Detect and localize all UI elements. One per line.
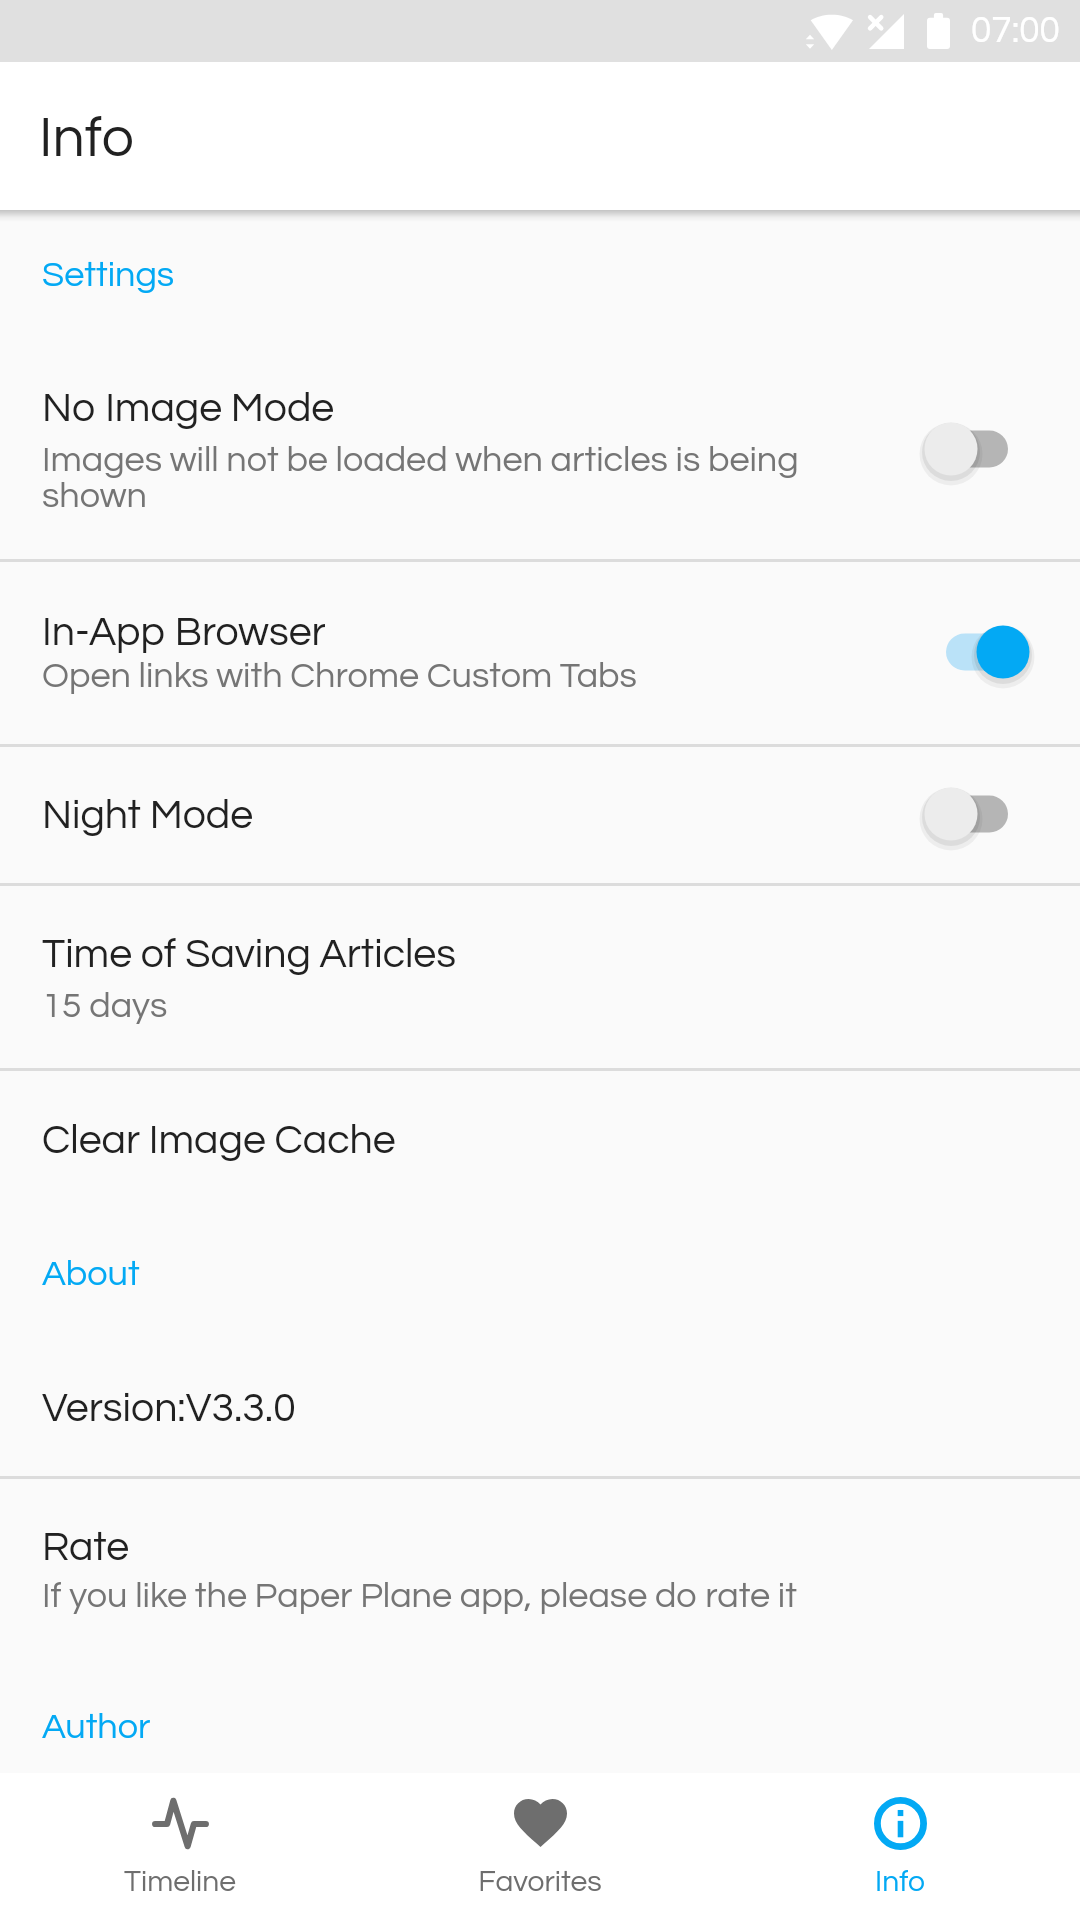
button[interactable]: Version:V3.3.0	[0, 1338, 1080, 1477]
staticText: Settings	[42, 256, 175, 293]
button[interactable]: Rate	[0, 1479, 1080, 1662]
button[interactable]: Time of Saving Articles	[0, 886, 1080, 1069]
button[interactable]: Night Mode	[0, 747, 1080, 884]
staticText: Info	[39, 109, 134, 168]
other: Battery full	[927, 13, 950, 49]
button[interactable]: In-App Browser on	[905, 607, 1028, 697]
button[interactable]: Clear Image Cache	[0, 1071, 1080, 1208]
staticText: Timeline	[124, 1866, 236, 1897]
staticText: Rate	[42, 1526, 130, 1568]
staticText: Info	[875, 1866, 925, 1897]
staticText: About	[42, 1255, 140, 1292]
staticText: 15 days	[42, 987, 842, 1024]
button[interactable]: Timeline	[0, 1773, 360, 1920]
staticText: 07:00	[971, 12, 1060, 50]
button[interactable]: No Image Mode	[0, 334, 1080, 560]
staticText: Night Mode	[42, 794, 254, 836]
staticText: No Image Mode	[42, 387, 335, 429]
other: No signal	[869, 14, 904, 49]
button[interactable]: Favorites	[360, 1773, 720, 1920]
staticText: Time of Saving Articles	[42, 933, 456, 975]
button[interactable]: In-App Browser	[0, 562, 1080, 745]
staticText: In-App Browser	[42, 611, 326, 653]
staticText: If you like the Paper Plane app, please …	[42, 1577, 992, 1614]
staticText: Version:V3.3.0	[42, 1387, 296, 1429]
button[interactable]: Info	[720, 1773, 1080, 1920]
other: Wi-Fi	[806, 12, 853, 50]
button[interactable]: No Image Mode off	[905, 404, 1028, 494]
staticText: Clear Image Cache	[42, 1119, 396, 1161]
staticText: Open links with Chrome Custom Tabs	[42, 657, 842, 694]
staticText: Favorites	[478, 1866, 602, 1897]
staticText: Images will not be loaded when articles …	[42, 441, 842, 515]
button[interactable]: Night Mode off	[905, 769, 1028, 859]
staticText: Author	[42, 1708, 151, 1745]
